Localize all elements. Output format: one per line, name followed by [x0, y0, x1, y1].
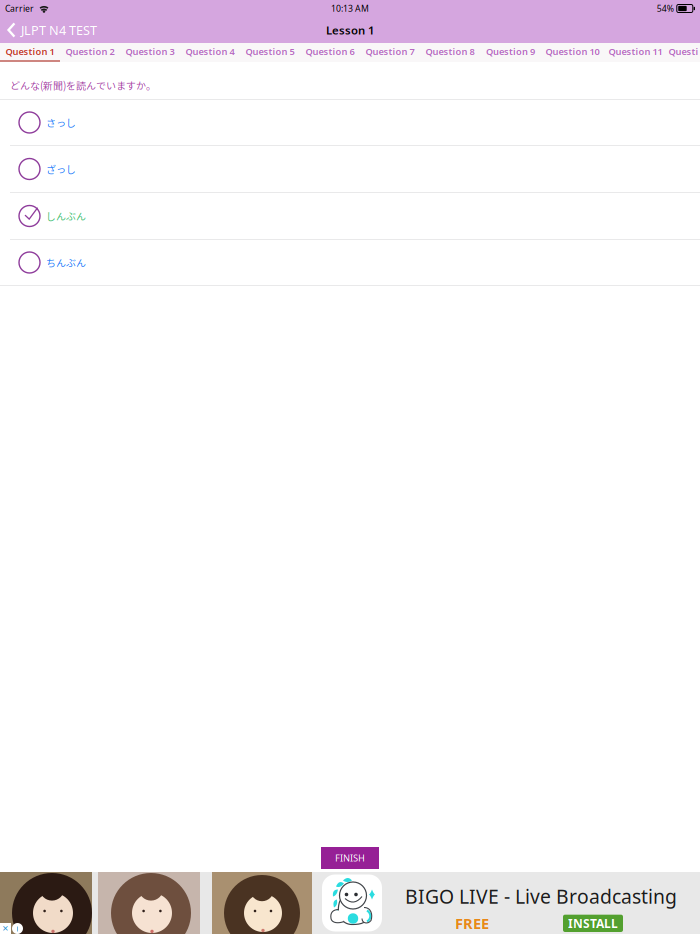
button[interactable]: Ad information — [12, 923, 23, 934]
staticText: Question 1 — [5, 45, 54, 58]
staticText: さっし — [46, 115, 76, 130]
staticText: Question 11 — [608, 45, 662, 58]
staticText: 10:13 AM — [331, 3, 369, 14]
staticText: i — [16, 923, 18, 934]
staticText: しんぶん — [46, 209, 86, 223]
button[interactable]: Question 3 — [120, 43, 180, 62]
button[interactable]: Question 7 — [360, 43, 420, 62]
button[interactable]: Question 5 — [240, 43, 300, 62]
button[interactable]: FINISH — [321, 847, 379, 869]
staticText: Question 8 — [425, 45, 474, 58]
button[interactable]: ざっし — [0, 146, 700, 192]
staticText: 54% — [657, 3, 674, 14]
staticText: Question 6 — [305, 45, 354, 58]
staticText: Lesson 1 — [326, 22, 374, 38]
button[interactable]: さっし — [0, 100, 700, 145]
button[interactable]: Question 6 — [300, 43, 360, 62]
button[interactable]: Close ad — [0, 923, 11, 934]
staticText: BIGO LIVE - Live Broadcasting — [405, 883, 677, 909]
button[interactable]: Question 9 — [480, 43, 541, 62]
button[interactable]: ちんぶん — [0, 240, 700, 285]
staticText: どんな(新聞)を読んでいますか。 — [10, 78, 156, 92]
staticText: Question 9 — [486, 45, 535, 58]
staticText: ✕ — [2, 924, 9, 933]
staticText: FINISH — [335, 852, 365, 864]
button[interactable]: Question 1 — [0, 43, 60, 62]
button[interactable]: JLPT N4 TEST — [0, 17, 105, 43]
staticText: FREE — [455, 913, 489, 933]
staticText: JLPT N4 TEST — [21, 21, 97, 39]
button[interactable]: Question 8 — [420, 43, 480, 62]
staticText: Question 10 — [545, 45, 599, 58]
staticText: Question 4 — [185, 45, 234, 58]
staticText: Question 3 — [125, 45, 174, 58]
button[interactable]: しんぶん — [0, 193, 700, 239]
staticText: ざっし — [46, 162, 76, 176]
staticText: Question 2 — [65, 45, 114, 58]
staticText: Questi — [668, 45, 698, 58]
staticText: ちんぶん — [46, 255, 86, 270]
button[interactable]: Question 2 — [60, 43, 120, 62]
button[interactable]: Question 11 — [604, 43, 667, 62]
staticText: Carrier — [5, 3, 34, 14]
staticText: Question 5 — [245, 45, 294, 58]
button[interactable]: Question 4 — [180, 43, 240, 62]
button[interactable]: INSTALL — [563, 915, 623, 932]
button[interactable]: Questi — [667, 43, 700, 62]
staticText: INSTALL — [568, 915, 618, 931]
button[interactable]: Question 10 — [541, 43, 604, 62]
staticText: Question 7 — [365, 45, 414, 58]
